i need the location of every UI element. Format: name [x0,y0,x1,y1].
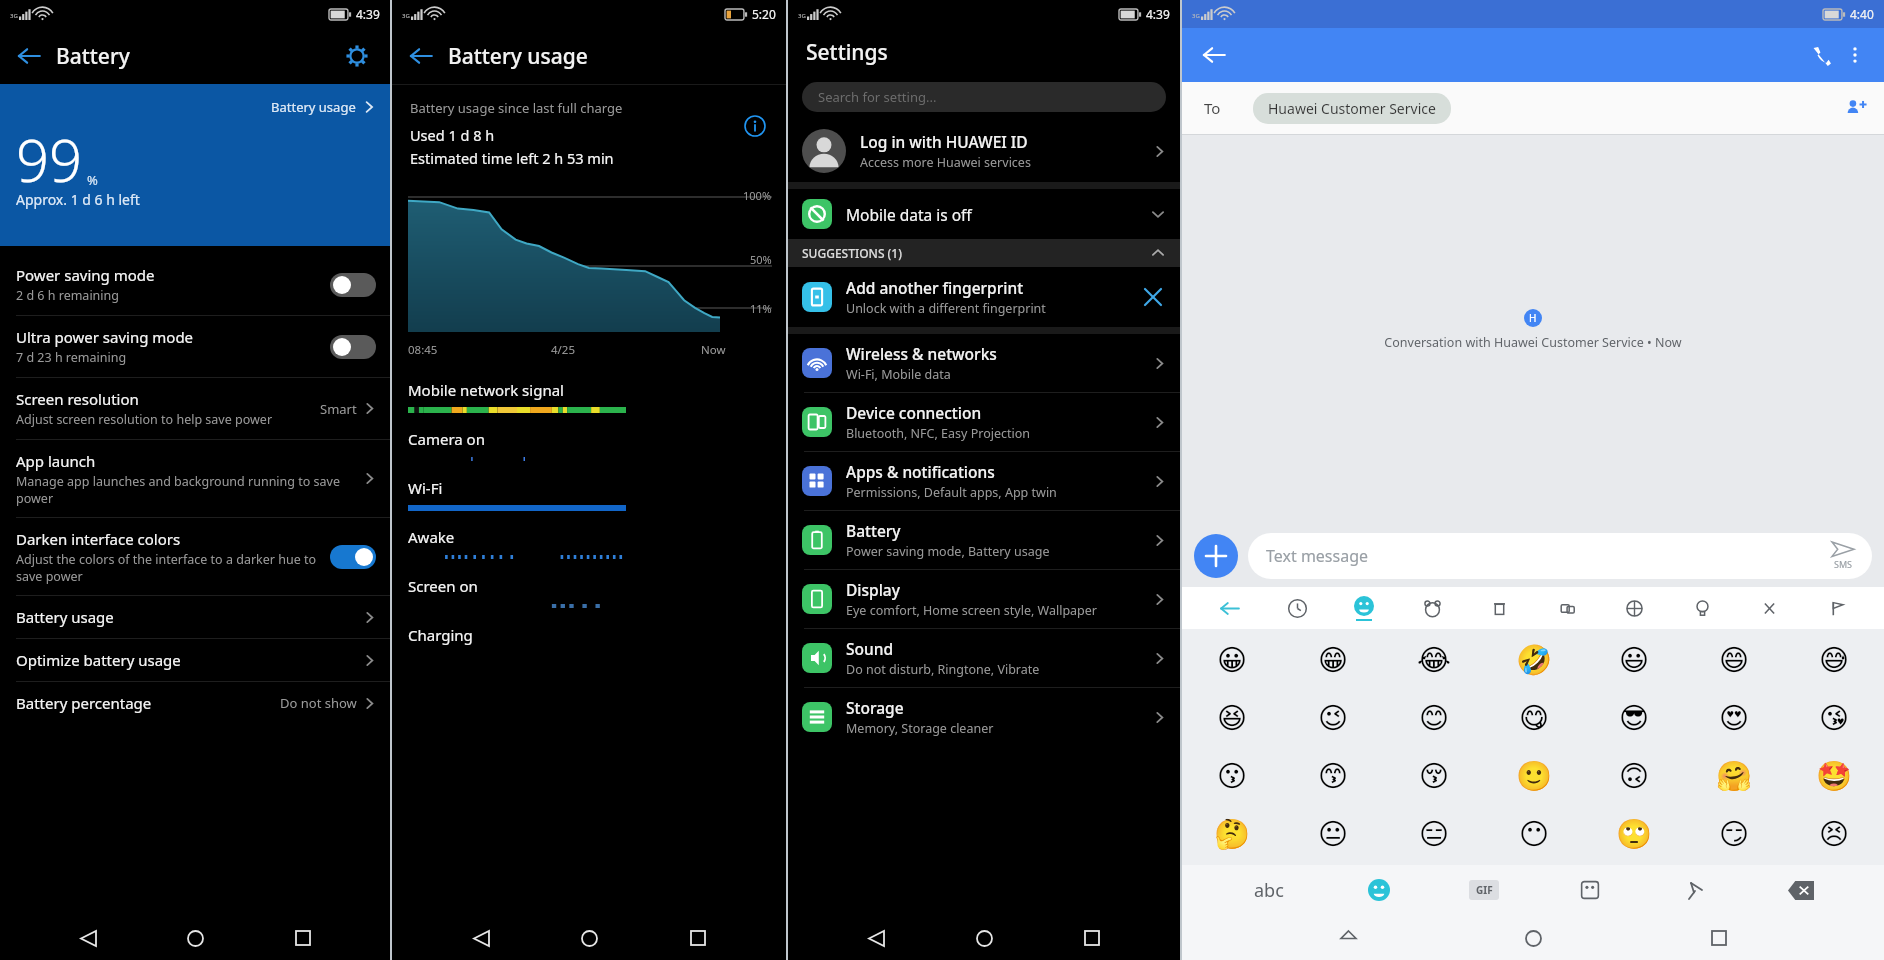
button[interactable]: Symbols [1749,588,1789,628]
button[interactable]: 🤣 [1484,631,1584,689]
button[interactable]: 😎 [1584,689,1684,747]
button[interactable]: Battery [788,511,1180,569]
button[interactable]: Home [1513,918,1553,958]
button[interactable]: Battery usage [271,98,376,116]
button[interactable]: 😁 [1283,631,1384,689]
button[interactable]: Mobile data is off [788,189,1180,239]
button[interactable]: 🤩 [1784,747,1884,805]
button[interactable]: 😶 [1484,805,1584,863]
button[interactable]: Smileys [1344,588,1384,628]
button[interactable]: Settings [342,41,372,71]
button[interactable]: 😙 [1283,747,1384,805]
button[interactable]: App launch [0,440,390,517]
button[interactable]: Device connection [788,393,1180,451]
button[interactable]: 😉 [1283,689,1384,747]
button[interactable]: Emoji [1357,868,1401,912]
button[interactable]: Add contact [1840,92,1872,124]
button[interactable]: Back [461,918,501,958]
button[interactable]: Huawei Customer Service [1268,99,1436,118]
button[interactable]: Dismiss [1140,284,1166,310]
button[interactable]: Awake [392,519,786,568]
button[interactable]: Home [964,918,1004,958]
button[interactable]: Home [569,918,609,958]
button[interactable]: Call [1804,38,1838,72]
button[interactable]: Optimize battery usage [0,639,390,681]
button[interactable]: Battery percentage [0,682,390,724]
button[interactable]: Back [392,28,786,84]
button[interactable]: Power saving mode [0,254,390,315]
button[interactable]: Objects [1682,588,1722,628]
button[interactable]: Text message [1248,533,1872,579]
button[interactable]: Pin [1673,868,1717,912]
button[interactable]: 😍 [1684,689,1784,747]
button[interactable]: Back [0,28,390,84]
button[interactable]: 😂 [1384,631,1484,689]
button[interactable]: Storage [788,688,1180,746]
button[interactable]: Darken interface colors [0,518,390,595]
button[interactable]: Wireless & networks [788,334,1180,392]
button[interactable]: Back [1198,39,1230,71]
button[interactable]: 😐 [1283,805,1384,863]
button[interactable]: 😄 [1684,631,1784,689]
button[interactable]: Back [856,918,896,958]
button[interactable]: Add another fingerprint [788,267,1180,327]
button[interactable]: Home [175,918,215,958]
button[interactable]: Charging [392,617,786,666]
button[interactable]: 😣 [1784,805,1884,863]
button[interactable]: 🙃 [1584,747,1684,805]
button[interactable]: Flags [1817,588,1857,628]
button[interactable]: Stickers [1568,868,1612,912]
button[interactable]: Info [742,113,768,139]
button[interactable]: Battery usage [0,596,390,638]
button[interactable]: Ultra power saving mode [330,335,376,359]
button[interactable]: Power saving mode [330,273,376,297]
button[interactable]: Animals [1412,588,1452,628]
button[interactable]: Recents [1699,918,1739,958]
button[interactable]: 😀 [1182,631,1283,689]
button[interactable]: abc [1243,870,1295,910]
button[interactable]: 😃 [1584,631,1684,689]
button[interactable]: Recents [283,918,323,958]
button[interactable]: Back [1328,918,1368,958]
button[interactable]: Recents [1072,918,1112,958]
button[interactable]: 😋 [1484,689,1584,747]
button[interactable]: Mobile network signal [392,372,786,421]
button[interactable]: Screen on [392,568,786,617]
button[interactable]: Back [14,41,44,71]
button[interactable]: Screen resolution [0,378,390,439]
button[interactable]: 😅 [1784,631,1884,689]
button[interactable]: Apps & notifications [788,452,1180,510]
button[interactable]: 🙄 [1584,805,1684,863]
button[interactable]: Log in with HUAWEI ID [788,120,1180,182]
button[interactable]: 😏 [1684,805,1784,863]
button[interactable]: Search for setting... [802,82,1166,112]
button[interactable]: Darken interface colors [330,545,376,569]
button[interactable]: Display [788,570,1180,628]
button[interactable]: 😘 [1784,689,1884,747]
button[interactable]: 😚 [1384,747,1484,805]
button[interactable]: Back [68,918,108,958]
button[interactable]: Ultra power saving mode [0,316,390,377]
button[interactable]: Delete [1779,868,1823,912]
button[interactable]: Food [1479,588,1519,628]
button[interactable]: Wi-Fi [392,470,786,519]
button[interactable]: More options [1838,38,1872,72]
button[interactable]: Camera on [392,421,786,470]
button[interactable]: Sound [788,629,1180,687]
button[interactable]: Battery usage [0,84,390,246]
button[interactable]: 😗 [1182,747,1283,805]
button[interactable]: Travel [1614,588,1654,628]
button[interactable]: Recent [1277,588,1317,628]
button[interactable]: 😊 [1384,689,1484,747]
button[interactable]: 🤔 [1182,805,1283,863]
button[interactable]: 🙂 [1484,747,1584,805]
button[interactable]: GIF [1462,868,1506,912]
button[interactable]: 😆 [1182,689,1283,747]
button[interactable]: 🤗 [1684,747,1784,805]
button[interactable]: Recents [678,918,718,958]
button[interactable]: Activity [1547,588,1587,628]
button[interactable]: Back [406,41,436,71]
button[interactable]: To [1182,82,1884,134]
button[interactable]: 😑 [1384,805,1484,863]
button[interactable]: Back [1209,588,1249,628]
